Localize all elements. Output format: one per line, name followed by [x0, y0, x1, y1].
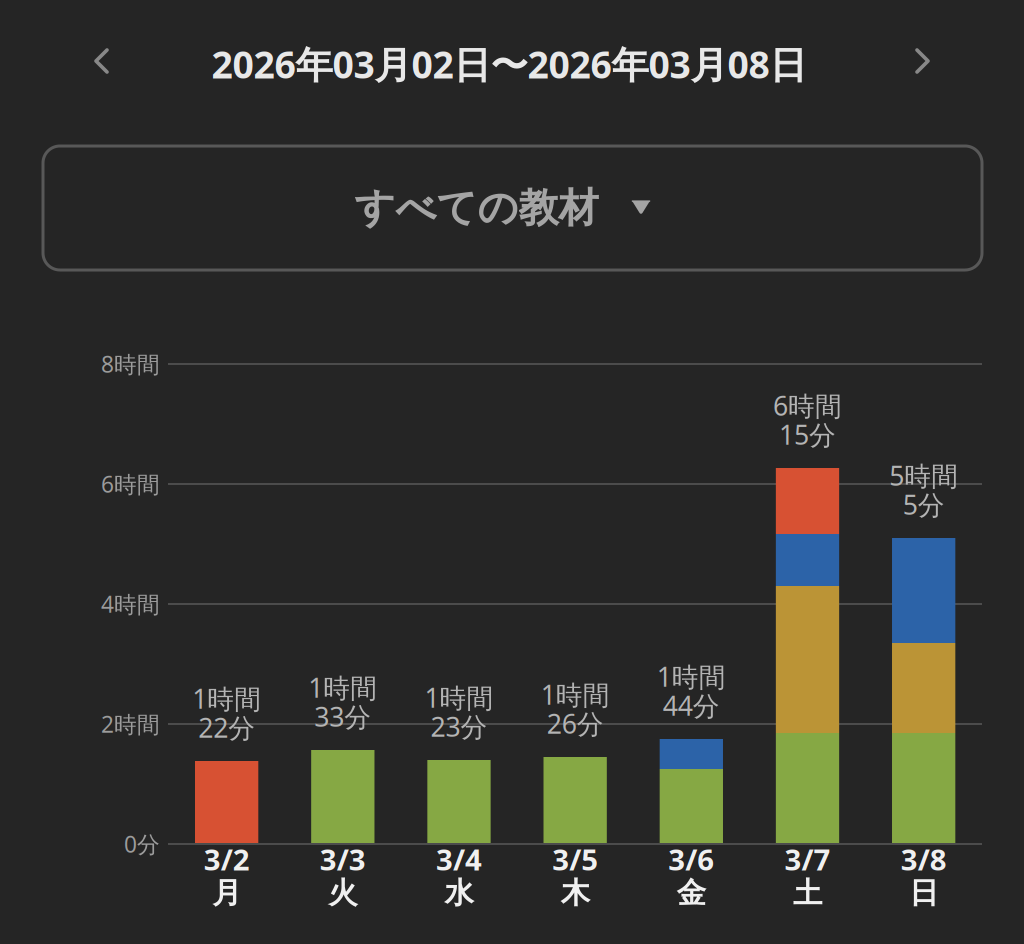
staticText: 5分: [903, 487, 945, 522]
staticText: 44分: [663, 688, 720, 723]
staticText: 0分: [124, 829, 160, 859]
staticText: 5時間: [889, 458, 958, 493]
staticText: 3/4: [436, 839, 482, 878]
staticText: 6時間: [101, 469, 160, 499]
staticText: 26分: [547, 706, 604, 741]
button[interactable]: Next week: [887, 25, 959, 97]
staticText: 3/2: [204, 839, 250, 878]
staticText: 1時間: [192, 681, 261, 716]
staticText: 3/6: [668, 839, 714, 878]
staticText: 火: [328, 875, 357, 911]
staticText: 土: [793, 875, 822, 911]
staticText: 33分: [314, 699, 371, 734]
staticText: 3/7: [784, 839, 830, 878]
staticText: 3/3: [320, 839, 366, 878]
staticText: 水: [444, 875, 473, 911]
staticText: 金: [677, 875, 706, 911]
staticText: 1時間: [657, 659, 726, 694]
staticText: 1時間: [424, 680, 493, 715]
staticText: 木: [561, 875, 590, 911]
staticText: 4時間: [101, 589, 160, 619]
staticText: 15分: [779, 417, 836, 452]
staticText: 3/8: [901, 839, 947, 878]
button[interactable]: すべての教材: [43, 146, 982, 270]
staticText: 日: [909, 875, 938, 911]
staticText: 23分: [430, 709, 487, 744]
staticText: 2026年03月02日〜2026年03月08日: [211, 39, 806, 89]
button[interactable]: Previous week: [65, 25, 137, 97]
staticText: 2時間: [101, 709, 160, 739]
staticText: 1時間: [541, 677, 610, 712]
staticText: 1時間: [308, 670, 377, 705]
staticText: すべての教材: [354, 183, 598, 232]
staticText: 6時間: [773, 388, 842, 423]
staticText: 3/5: [552, 839, 598, 878]
staticText: 8時間: [101, 349, 160, 379]
staticText: 22分: [198, 710, 255, 745]
staticText: 月: [212, 875, 241, 911]
